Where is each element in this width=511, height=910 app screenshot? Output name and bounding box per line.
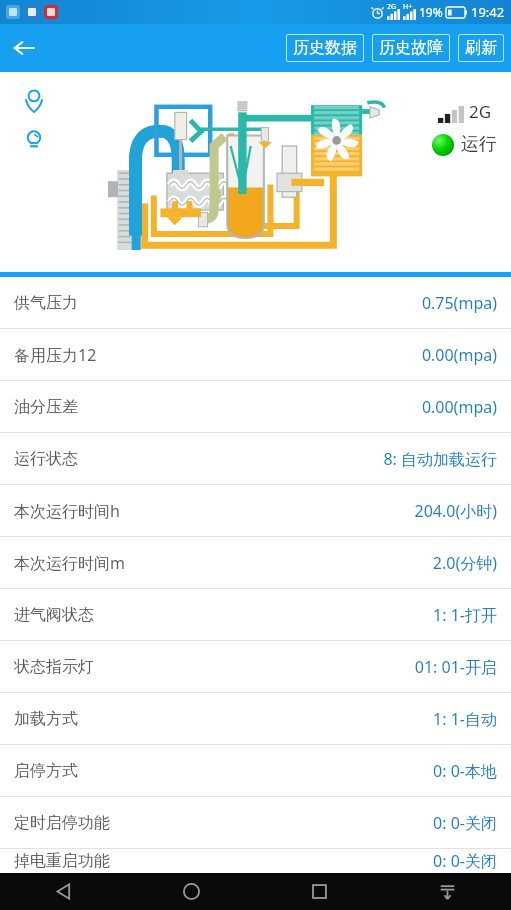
staticText: 8: 自动加载运行 [383,448,497,470]
button[interactable]: 定时启停功能 [0,797,511,848]
staticText: 2G [387,2,397,12]
staticText: 进气阀状态 [14,605,94,625]
staticText: 本次运行时间h [14,500,120,522]
staticText: 01: 01-开启 [414,656,497,678]
button[interactable]: Tips [14,120,54,160]
staticText: 掉电重启功能 [14,851,110,871]
staticText: 运行状态 [14,449,78,469]
staticText: 油分压差 [14,397,78,417]
button[interactable]: Home [127,873,255,910]
button[interactable]: 掉电重启功能 [0,849,511,873]
staticText: 历史故障 [379,38,443,58]
staticText: 状态指示灯 [14,657,94,677]
staticText: 2G [469,100,492,123]
staticText: 刷新 [465,38,497,58]
staticText: 204.0(小时) [414,500,497,522]
staticText: 19:42 [471,3,505,21]
button[interactable]: 本次运行时间h [0,485,511,536]
button[interactable]: 刷新 [458,34,504,62]
staticText: 运行 [461,133,497,156]
button[interactable]: 运行状态 [0,433,511,484]
staticText: 启停方式 [14,761,78,781]
staticText: 供气压力 [14,293,78,313]
button[interactable]: Location [14,80,54,120]
staticText: 0.75(mpa) [421,292,497,314]
button[interactable]: 进气阀状态 [0,589,511,640]
button[interactable]: Back [0,24,48,72]
staticText: 定时启停功能 [14,813,110,833]
button[interactable]: 历史数据 [286,34,364,62]
staticText: H+ [403,2,413,12]
staticText: 历史数据 [293,38,357,58]
button[interactable]: 本次运行时间m [0,537,511,588]
staticText: 1: 1-自动 [433,708,497,730]
staticText: 1: 1-打开 [433,604,497,626]
button[interactable]: 历史故障 [372,34,450,62]
button[interactable]: Hide navigation bar [383,873,511,910]
staticText: 加载方式 [14,709,78,729]
staticText: 备用压力12 [14,344,97,366]
staticText: 0: 0-关闭 [433,812,497,834]
staticText: 本次运行时间m [14,552,125,574]
button[interactable]: 备用压力12 [0,329,511,380]
staticText: 0.00(mpa) [421,344,497,366]
button[interactable]: 供气压力 [0,277,511,328]
button[interactable]: 油分压差 [0,381,511,432]
button[interactable]: Recents [255,873,383,910]
staticText: 19% [419,4,443,20]
button[interactable]: Back [0,873,127,910]
button[interactable]: 启停方式 [0,745,511,796]
staticText: 0: 0-本地 [433,760,497,782]
button[interactable]: 状态指示灯 [0,641,511,692]
staticText: 0.00(mpa) [421,396,497,418]
staticText: 0: 0-关闭 [433,850,497,872]
staticText: 2.0(分钟) [432,552,497,574]
button[interactable]: 加载方式 [0,693,511,744]
